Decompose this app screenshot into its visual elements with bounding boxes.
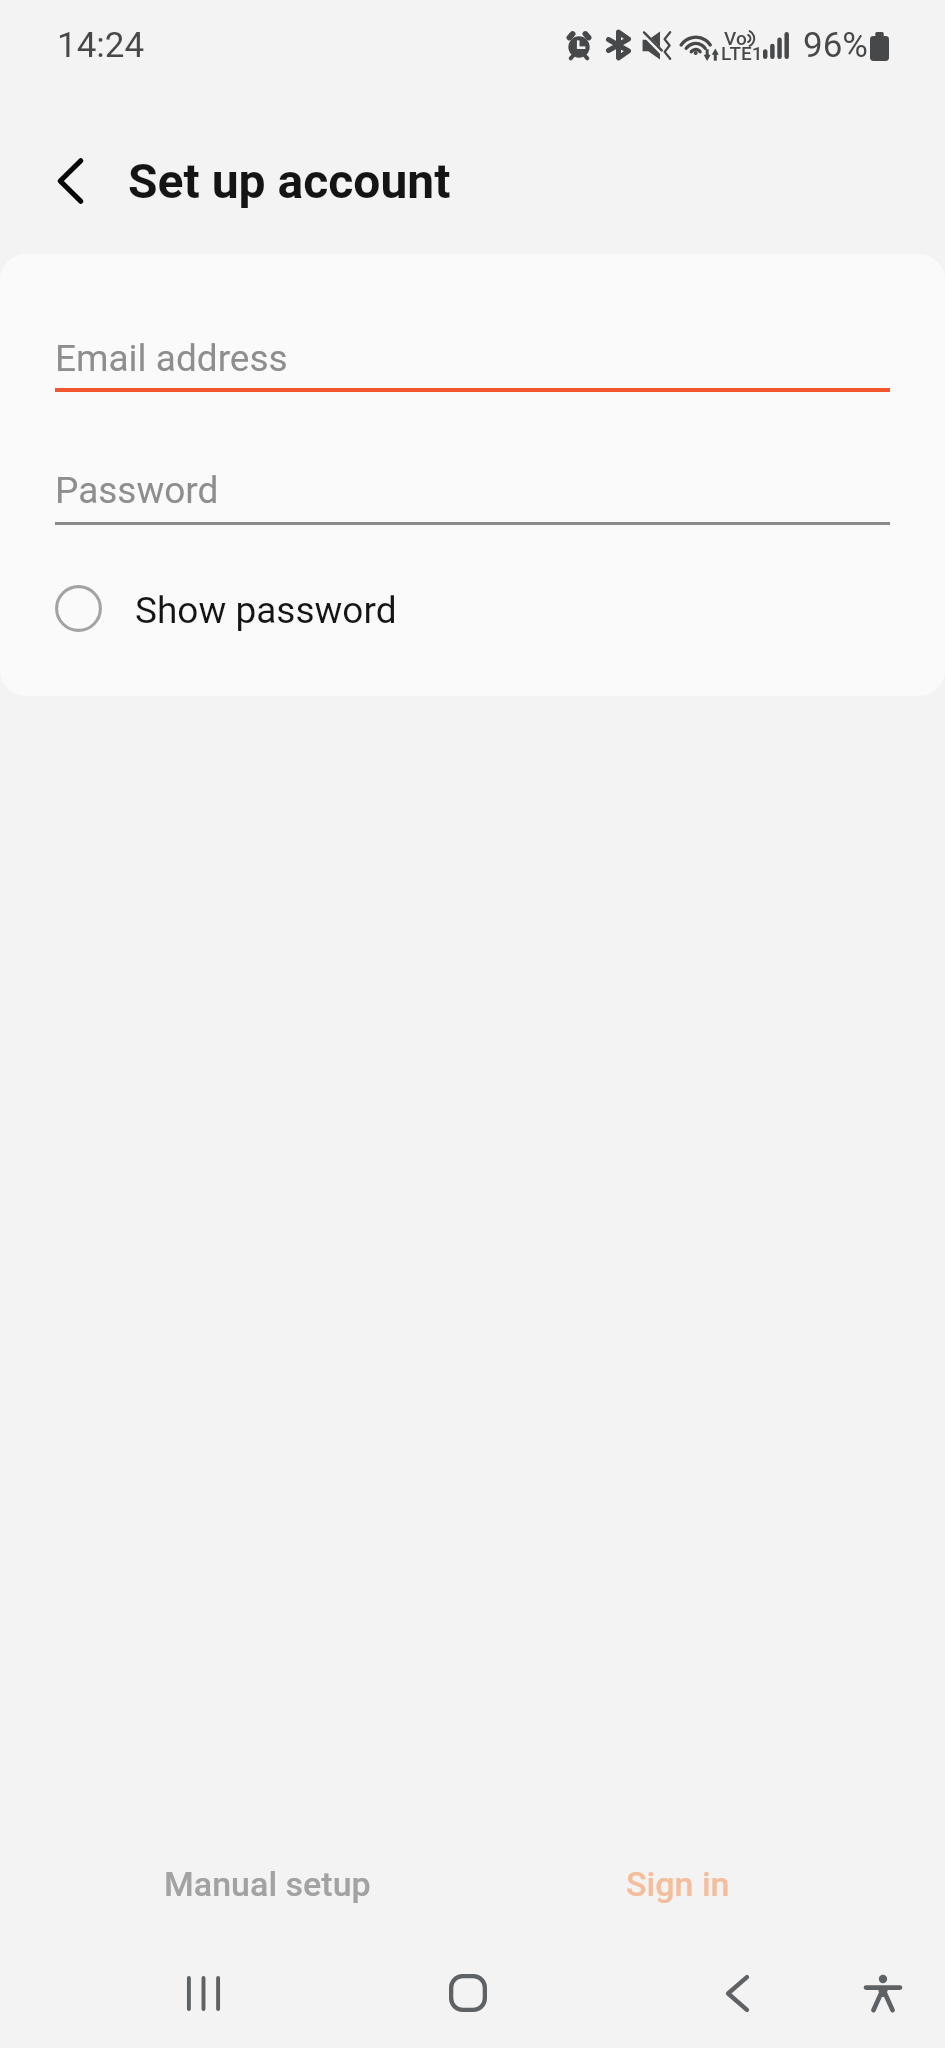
staticText: Manual setup bbox=[164, 1864, 371, 1904]
staticText: Show password bbox=[135, 589, 397, 632]
button[interactable]: Recent apps bbox=[170, 1938, 236, 2048]
staticText: Set up account bbox=[128, 153, 451, 209]
staticText: 14:24 bbox=[57, 25, 145, 66]
button[interactable]: Back bbox=[704, 1938, 770, 2048]
button[interactable]: Show password bbox=[0, 570, 945, 646]
staticText: Password bbox=[55, 469, 219, 512]
button[interactable]: Home bbox=[435, 1938, 501, 2048]
button[interactable]: Sign in bbox=[525, 1845, 830, 1923]
staticText: LTE1 bbox=[721, 42, 763, 64]
button[interactable]: Password bbox=[0, 452, 945, 528]
staticText: Sign in bbox=[626, 1864, 730, 1904]
button[interactable]: Manual setup bbox=[115, 1845, 420, 1923]
staticText: Email address bbox=[55, 337, 288, 380]
button[interactable]: Email address bbox=[0, 320, 945, 396]
staticText: Vo bbox=[724, 27, 747, 49]
button[interactable]: Navigate up bbox=[28, 139, 112, 223]
button[interactable]: Accessibility bbox=[850, 1938, 916, 2048]
staticText: 96% bbox=[803, 25, 868, 66]
